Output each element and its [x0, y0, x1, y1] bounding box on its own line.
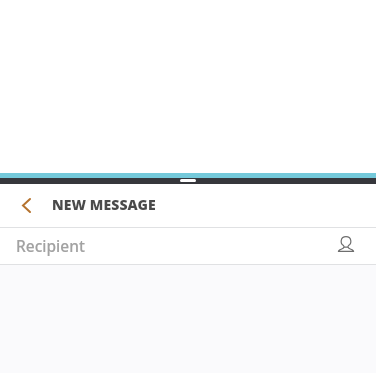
- button[interactable]: Choose contact: [328, 228, 364, 264]
- staticText: NEW MESSAGE: [52, 195, 156, 214]
- button[interactable]: Recipient: [0, 228, 376, 264]
- button[interactable]: Back: [0, 184, 50, 227]
- staticText: Recipient: [16, 235, 85, 256]
